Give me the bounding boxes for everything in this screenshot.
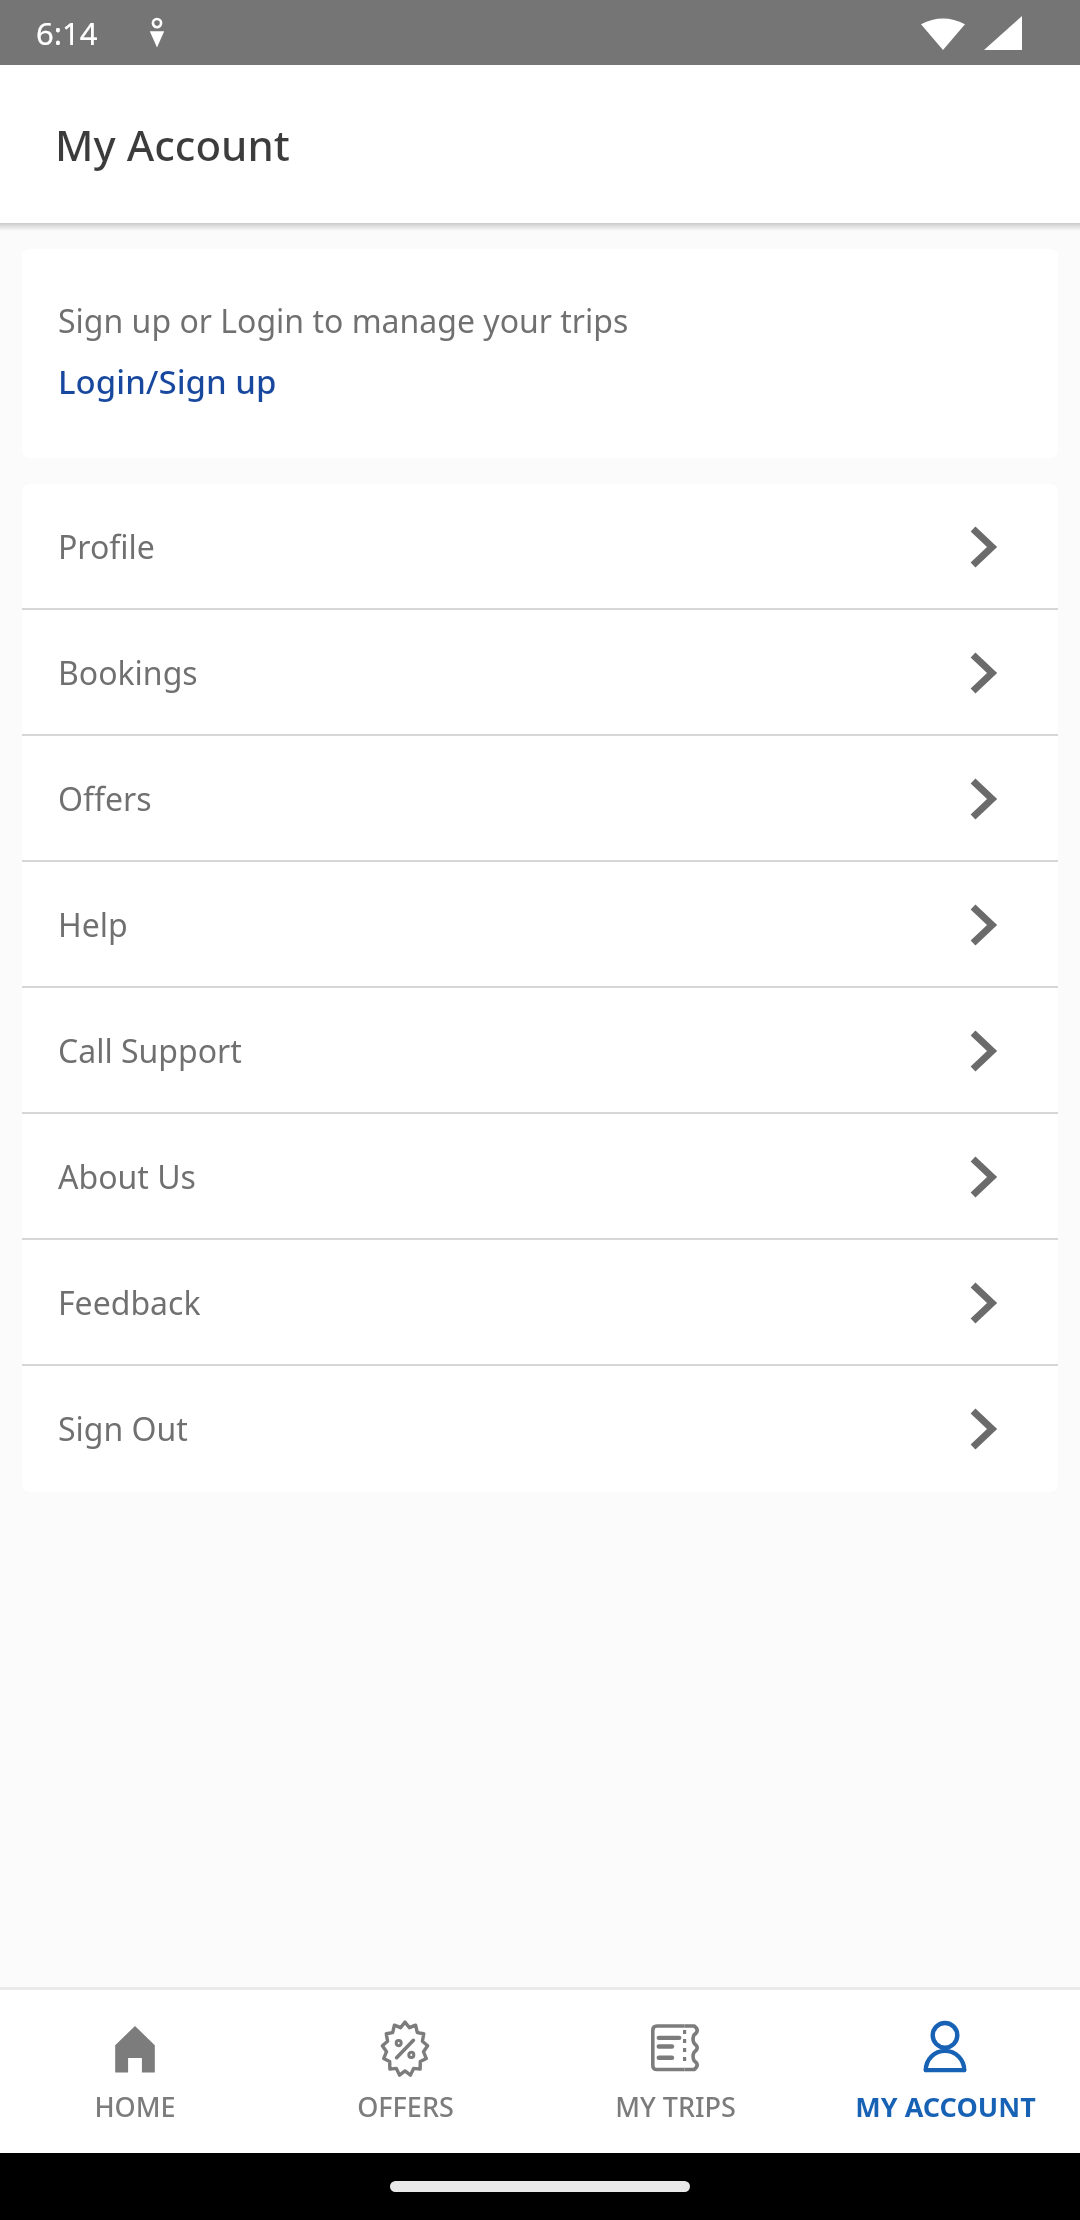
button[interactable]: Feedback (22, 1240, 1058, 1366)
button[interactable]: OFFERS (270, 2018, 540, 2125)
button[interactable]: Help (22, 862, 1058, 988)
button[interactable]: Profile (22, 484, 1058, 610)
button[interactable]: HOME (0, 2018, 270, 2125)
button[interactable]: Offers (22, 736, 1058, 862)
staticText: 6:14 (36, 12, 98, 54)
staticText: Bookings (58, 651, 198, 695)
button[interactable]: Bookings (22, 610, 1058, 736)
staticText: Sign Out (58, 1407, 188, 1451)
staticText: About Us (58, 1155, 196, 1199)
staticText: MY TRIPS (615, 2088, 736, 2125)
staticText: Help (58, 903, 128, 947)
button[interactable]: Call Support (22, 988, 1058, 1114)
staticText: My Account (55, 116, 290, 173)
button[interactable]: MY TRIPS (540, 2018, 810, 2125)
staticText: Profile (58, 525, 155, 569)
staticText: Call Support (58, 1029, 242, 1073)
staticText: Feedback (58, 1281, 201, 1325)
button[interactable]: Sign Out (22, 1366, 1058, 1492)
staticText: Offers (58, 777, 152, 821)
button[interactable]: Sign up or Login to manage your trips (22, 249, 1058, 458)
staticText: Sign up or Login to manage your trips (58, 299, 629, 343)
staticText: MY ACCOUNT (855, 2088, 1036, 2125)
button[interactable]: MY ACCOUNT (810, 2018, 1080, 2125)
staticText: OFFERS (357, 2088, 454, 2125)
button[interactable]: Login/Sign up (58, 359, 277, 404)
staticText: HOME (94, 2088, 176, 2125)
button[interactable]: About Us (22, 1114, 1058, 1240)
